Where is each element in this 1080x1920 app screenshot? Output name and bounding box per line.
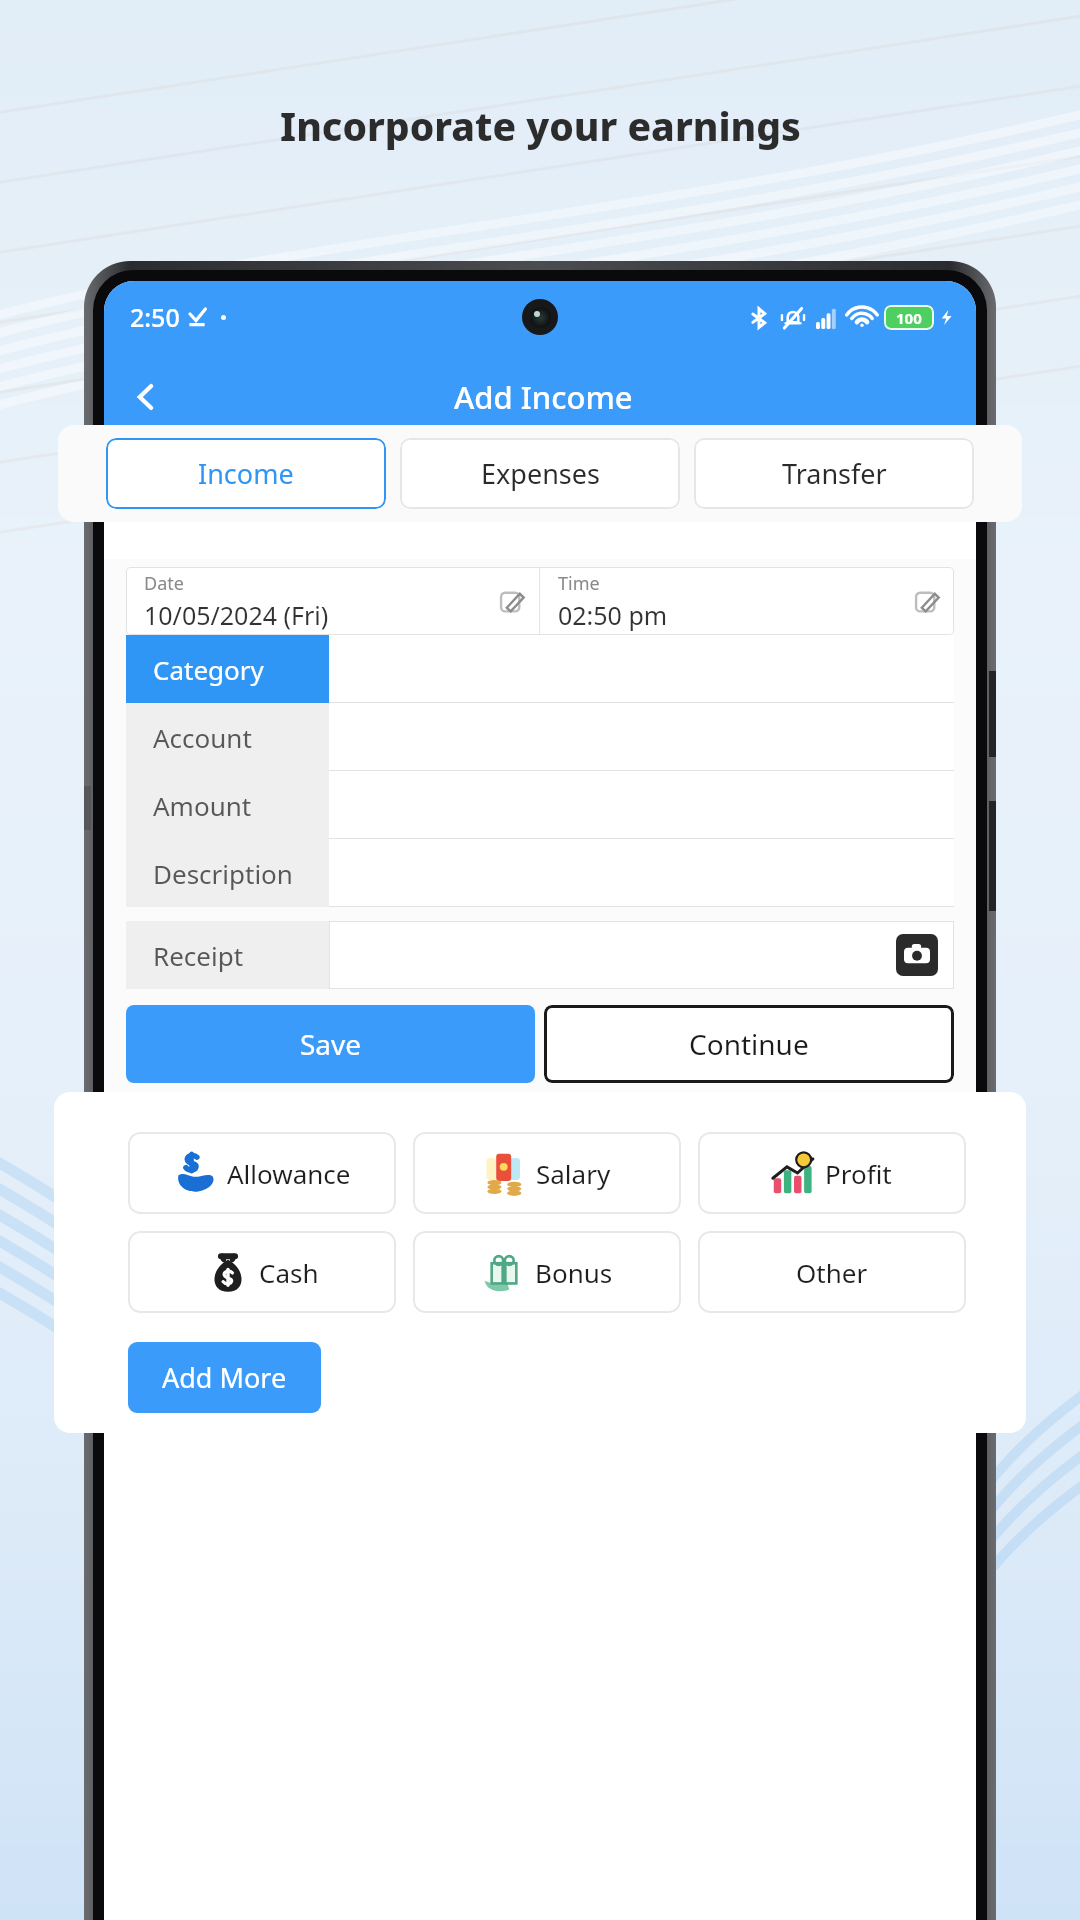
button[interactable]: Time	[540, 567, 954, 635]
button[interactable]: Income	[106, 438, 386, 509]
staticText: Incorporate your earnings	[280, 99, 801, 152]
staticText: 100	[896, 308, 922, 328]
button[interactable]: Allowance	[128, 1132, 396, 1214]
staticText: Date	[144, 571, 184, 596]
button[interactable]: Take photo	[896, 934, 938, 976]
staticText: 02:50 pm	[558, 598, 668, 632]
button[interactable]: Account	[126, 703, 954, 771]
button[interactable]: Cash	[128, 1231, 396, 1313]
staticText: Time	[558, 571, 600, 596]
other: Edit Date	[499, 588, 525, 614]
staticText: Continue	[689, 1025, 809, 1063]
button[interactable]: Salary	[413, 1132, 681, 1214]
button[interactable]: Description	[126, 839, 954, 907]
staticText: Salary	[536, 1156, 611, 1191]
button[interactable]: Receipt	[126, 921, 954, 989]
button[interactable]: Save	[126, 1005, 535, 1083]
staticText: Receipt	[153, 938, 244, 973]
button[interactable]: Profit	[698, 1132, 966, 1214]
button[interactable]: Other	[698, 1231, 966, 1313]
staticText: Description	[153, 856, 293, 891]
staticText: Add More	[162, 1359, 287, 1396]
button[interactable]: Continue	[544, 1005, 954, 1083]
button[interactable]: Add More	[128, 1342, 321, 1413]
button[interactable]: Category	[126, 635, 954, 703]
button[interactable]: Bonus	[413, 1231, 681, 1313]
staticText: Income	[198, 455, 294, 492]
staticText: Add Income	[454, 376, 633, 418]
button[interactable]: Transfer	[694, 438, 974, 509]
staticText: 10/05/2024 (Fri)	[144, 598, 329, 632]
staticText: Transfer	[782, 455, 887, 492]
other: Edit Time	[914, 588, 940, 614]
button[interactable]: Amount	[126, 771, 954, 839]
staticText: 2:50	[130, 300, 180, 334]
staticText: Other	[796, 1255, 868, 1290]
button[interactable]: Back	[118, 369, 174, 425]
staticText: Bonus	[535, 1255, 613, 1290]
button[interactable]: Date	[126, 567, 539, 635]
staticText: Account	[153, 720, 252, 755]
staticText: Amount	[153, 788, 252, 823]
staticText: CATEGORY TYPE	[438, 1123, 643, 1157]
staticText: Category	[153, 652, 264, 687]
staticText: Save	[300, 1025, 362, 1063]
staticText: Profit	[825, 1156, 892, 1191]
button[interactable]: Expenses	[400, 438, 680, 509]
staticText: Cash	[259, 1255, 319, 1290]
staticText: Expenses	[481, 455, 600, 492]
staticText: Allowance	[227, 1156, 351, 1191]
